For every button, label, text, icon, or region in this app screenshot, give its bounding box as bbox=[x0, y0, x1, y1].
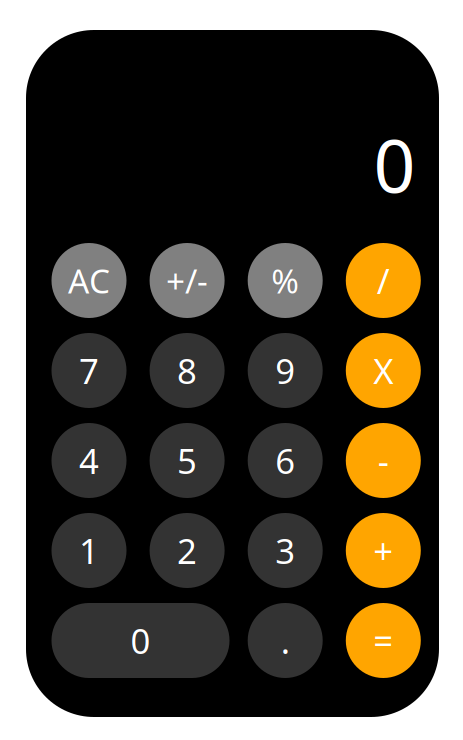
staticText: - bbox=[378, 437, 389, 483]
button[interactable]: All Clear bbox=[51, 243, 126, 318]
staticText: 7 bbox=[79, 347, 99, 393]
button[interactable]: Equals bbox=[346, 603, 421, 678]
button[interactable]: 7 bbox=[51, 333, 126, 408]
button[interactable]: Plus Minus bbox=[150, 243, 225, 318]
button[interactable]: 1 bbox=[51, 513, 126, 588]
button[interactable]: 3 bbox=[248, 513, 323, 588]
button[interactable]: 0 bbox=[51, 603, 229, 678]
staticText: % bbox=[271, 258, 299, 303]
staticText: 0 bbox=[373, 116, 415, 213]
staticText: 6 bbox=[275, 437, 295, 483]
staticText: 3 bbox=[275, 527, 295, 573]
button[interactable]: 4 bbox=[51, 423, 126, 498]
staticText: . bbox=[281, 617, 290, 663]
staticText: +/- bbox=[166, 258, 208, 303]
staticText: = bbox=[373, 617, 393, 663]
button[interactable]: 2 bbox=[150, 513, 225, 588]
button[interactable]: 6 bbox=[248, 423, 323, 498]
button[interactable]: Divide bbox=[346, 243, 421, 318]
button[interactable]: Percent bbox=[248, 243, 323, 318]
button[interactable]: Multiply bbox=[346, 333, 421, 408]
button[interactable]: Decimal Point bbox=[248, 603, 323, 678]
staticText: 4 bbox=[79, 437, 99, 483]
staticText: + bbox=[373, 527, 393, 573]
button[interactable]: 9 bbox=[248, 333, 323, 408]
button[interactable]: 8 bbox=[150, 333, 225, 408]
staticText: 0 bbox=[130, 617, 150, 663]
staticText: X bbox=[373, 347, 393, 393]
staticText: 1 bbox=[79, 527, 99, 573]
button[interactable]: Subtract bbox=[346, 423, 421, 498]
button[interactable]: Add bbox=[346, 513, 421, 588]
staticText: 2 bbox=[177, 527, 197, 573]
button[interactable]: 5 bbox=[150, 423, 225, 498]
staticText: 9 bbox=[275, 347, 295, 393]
staticText: AC bbox=[68, 258, 110, 303]
staticText: / bbox=[377, 257, 390, 303]
staticText: 8 bbox=[177, 347, 197, 393]
staticText: 5 bbox=[177, 437, 197, 483]
